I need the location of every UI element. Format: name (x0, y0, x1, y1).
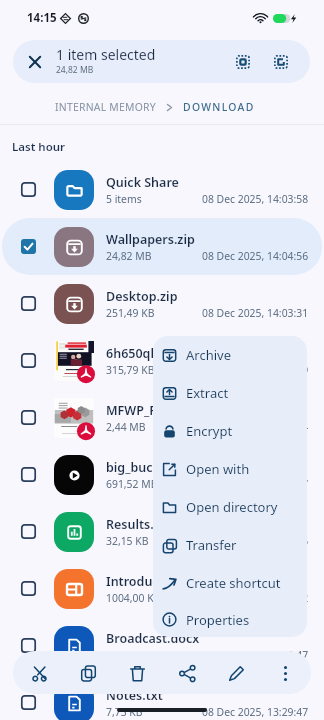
staticText: Create shortcut (186, 574, 281, 592)
button[interactable]: DOWNLOAD (183, 100, 255, 114)
button[interactable]: Quick Share (2, 161, 322, 218)
button[interactable]: Broadcast.docx (2, 617, 322, 674)
staticText: 08 Dec 2025, 13:29:47 (202, 648, 309, 662)
button[interactable]: cut (18, 652, 60, 694)
staticText: Notes.txt (106, 687, 163, 704)
staticText: 08 Dec 2025, 13:29:47 (202, 705, 309, 719)
staticText: 32,15 KB (106, 534, 149, 548)
button[interactable]: Open with (153, 450, 307, 488)
staticText: 7,73 KB (106, 705, 143, 719)
button[interactable]: Select all (226, 45, 260, 79)
button[interactable]: Notes.txt (2, 674, 322, 720)
staticText: 2,44 MB (106, 420, 146, 434)
button[interactable]: Extract (153, 374, 307, 412)
staticText: Transfer (186, 536, 237, 554)
staticText: 08 Dec 2025, 13:30:47 (202, 477, 309, 491)
button[interactable]: Introduction.pptx (2, 560, 322, 617)
button[interactable]: big_buck_bunny.mp4 (2, 446, 322, 503)
staticText: 14:15 (27, 10, 57, 26)
staticText: 08 Dec 2025, 14:03:44 (202, 420, 309, 434)
button[interactable]: more (264, 652, 306, 694)
staticText: 1004,00 KB (106, 591, 161, 605)
staticText: 7,73 KB (106, 648, 143, 662)
staticText: Archive (186, 346, 231, 364)
staticText: Extract (186, 384, 229, 402)
staticText: 251,49 KB (106, 306, 155, 320)
button[interactable]: Results.xlsx (2, 503, 322, 560)
staticText: 6h650qhbb1q.pdf (106, 345, 213, 362)
button[interactable]: Deselect all (264, 45, 298, 79)
button[interactable]: copy (67, 652, 109, 694)
staticText: Properties (186, 611, 250, 629)
staticText: 08 Dec 2025, 14:03:31 (202, 306, 309, 320)
button[interactable]: INTERNAL MEMORY (55, 100, 156, 114)
staticText: Desktop.zip (106, 288, 178, 305)
staticText: big_buck_bunny.mp4 (106, 459, 234, 476)
staticText: Wallpapers.zip (106, 231, 195, 248)
button[interactable]: Encrypt (153, 412, 307, 450)
staticText: 08 Dec 2025, 14:04:56 (202, 249, 309, 263)
button[interactable]: share (166, 652, 208, 694)
button[interactable]: Transfer (153, 526, 307, 564)
staticText: 24,82 MB (56, 64, 94, 76)
staticText: Broadcast.docx (106, 630, 200, 647)
staticText: Last hour (12, 139, 66, 155)
staticText: 315,79 KB (106, 363, 155, 377)
button[interactable]: delete (116, 652, 158, 694)
button[interactable]: Open directory (153, 488, 307, 526)
staticText: Results.xlsx (106, 516, 178, 533)
staticText: Open with (186, 460, 250, 478)
button[interactable]: MFWP_Flyer.pdf (2, 389, 322, 446)
staticText: Encrypt (186, 422, 233, 440)
staticText: 08 Dec 2025, 13:29:55 (202, 534, 309, 548)
staticText: Quick Share (106, 174, 179, 191)
button[interactable]: Close selection (13, 40, 56, 83)
staticText: Open directory (186, 498, 278, 516)
staticText: 24,82 MB (106, 249, 152, 263)
button[interactable]: Desktop.zip (2, 275, 322, 332)
button[interactable]: Properties (153, 602, 307, 637)
button[interactable]: Create shortcut (153, 564, 307, 602)
staticText: 1 item selected (56, 45, 156, 64)
staticText: 691,52 MB (106, 477, 158, 491)
staticText: 5 items (106, 192, 142, 206)
staticText: 08 Dec 2025, 14:03:58 (202, 192, 309, 206)
button[interactable]: Archive (153, 336, 307, 374)
staticText: MFWP_Flyer.pdf (106, 402, 201, 419)
staticText: 08 Dec 2025, 13:29:52 (202, 591, 309, 605)
button[interactable]: edit (215, 652, 257, 694)
staticText: Introduction.pptx (106, 573, 215, 590)
button[interactable]: 6h650qhbb1q.pdf (2, 332, 322, 389)
staticText: 08 Dec 2025, 14:03:59 (202, 363, 309, 377)
button[interactable]: Wallpapers.zip (2, 218, 322, 275)
